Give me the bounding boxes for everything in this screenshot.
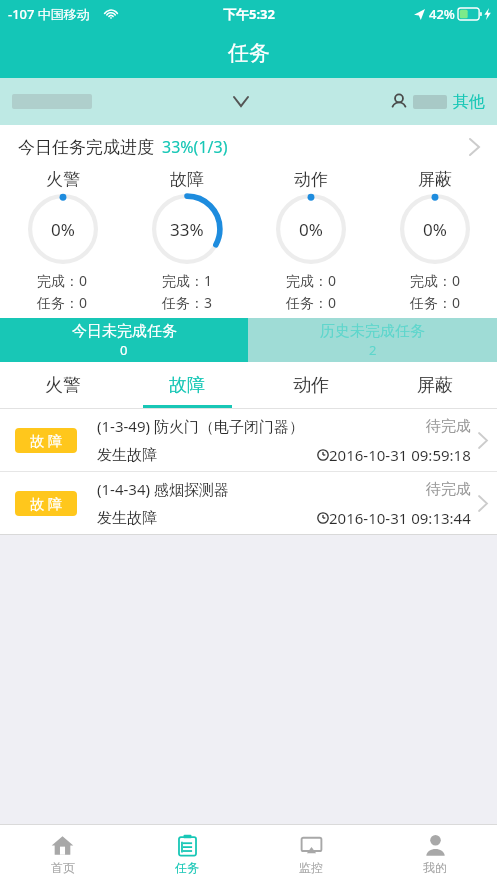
button[interactable]: 首页 xyxy=(0,825,125,883)
staticText: 屏蔽 xyxy=(417,374,453,397)
staticText: 发生故障 xyxy=(97,509,157,528)
button[interactable]: 故障 xyxy=(125,169,249,312)
button[interactable]: 历史未完成任务 xyxy=(248,318,497,362)
staticText: 其他 xyxy=(453,92,485,112)
staticText: 2016-10-31 09:13:44 xyxy=(329,508,471,528)
staticText: 下午5:32 xyxy=(223,5,275,23)
button[interactable]: 监控 xyxy=(249,825,373,883)
button[interactable]: 故 障 xyxy=(0,409,497,471)
button[interactable]: 火警 xyxy=(0,362,125,408)
staticText: 任务：0 xyxy=(37,293,88,312)
staticText: 33% xyxy=(170,218,204,241)
staticText: 故 障 xyxy=(30,431,62,450)
staticText: 2016-10-31 09:59:18 xyxy=(329,445,471,465)
staticText: 0 xyxy=(120,341,128,359)
button[interactable]: 故障 xyxy=(125,362,249,408)
staticText: 任务：3 xyxy=(162,293,213,312)
button[interactable]: 今日任务完成进度 xyxy=(0,125,497,169)
staticText: 动作 xyxy=(294,169,328,190)
staticText: 0% xyxy=(299,218,323,241)
staticText: 我的 xyxy=(423,860,447,875)
staticText: (1-3-49) 防火门（电子闭门器） xyxy=(97,416,304,436)
button[interactable]: 今日未完成任务 xyxy=(0,318,248,362)
staticText: 任务：0 xyxy=(410,293,461,312)
button[interactable]: 火警 xyxy=(0,169,125,312)
staticText: 任务 xyxy=(228,40,270,66)
staticText: 动作 xyxy=(293,374,329,397)
button[interactable]: 任务 xyxy=(125,825,249,883)
button[interactable]: 屏蔽 xyxy=(373,362,497,408)
button[interactable]: 动作 xyxy=(249,362,373,408)
button[interactable]: 其他 xyxy=(0,78,497,125)
staticText: 0% xyxy=(423,218,447,241)
staticText: 待完成 xyxy=(426,480,471,499)
staticText: 故 障 xyxy=(30,494,62,513)
button[interactable]: 动作 xyxy=(249,169,373,312)
staticText: 首页 xyxy=(51,860,75,875)
staticText: 故障 xyxy=(170,169,204,190)
staticText: 33%(1/3) xyxy=(162,136,228,158)
staticText: 0% xyxy=(51,218,75,241)
staticText: 今日未完成任务 xyxy=(72,322,177,341)
button[interactable]: 屏蔽 xyxy=(373,169,497,312)
staticText: 监控 xyxy=(299,860,323,875)
staticText: -107 中国移动 xyxy=(8,5,90,23)
staticText: 屏蔽 xyxy=(418,169,452,190)
staticText: (1-4-34) 感烟探测器 xyxy=(97,479,229,499)
staticText: 完成：0 xyxy=(286,271,337,290)
staticText: 完成：1 xyxy=(162,271,213,290)
staticText: 火警 xyxy=(45,374,81,397)
staticText: 今日任务完成进度 xyxy=(18,137,154,158)
staticText: 任务：0 xyxy=(286,293,337,312)
staticText: 完成：0 xyxy=(37,271,88,290)
staticText: 火警 xyxy=(46,169,80,190)
button[interactable]: 故 障 xyxy=(0,472,497,534)
staticText: 任务 xyxy=(175,860,199,875)
staticText: 2 xyxy=(369,341,377,359)
button[interactable]: 其他 xyxy=(453,92,485,112)
staticText: 发生故障 xyxy=(97,446,157,465)
staticText: 故障 xyxy=(169,374,205,397)
staticText: 42% xyxy=(429,5,455,23)
staticText: 历史未完成任务 xyxy=(320,322,425,341)
staticText: 完成：0 xyxy=(410,271,461,290)
staticText: 待完成 xyxy=(426,417,471,436)
button[interactable]: 我的 xyxy=(373,825,497,883)
